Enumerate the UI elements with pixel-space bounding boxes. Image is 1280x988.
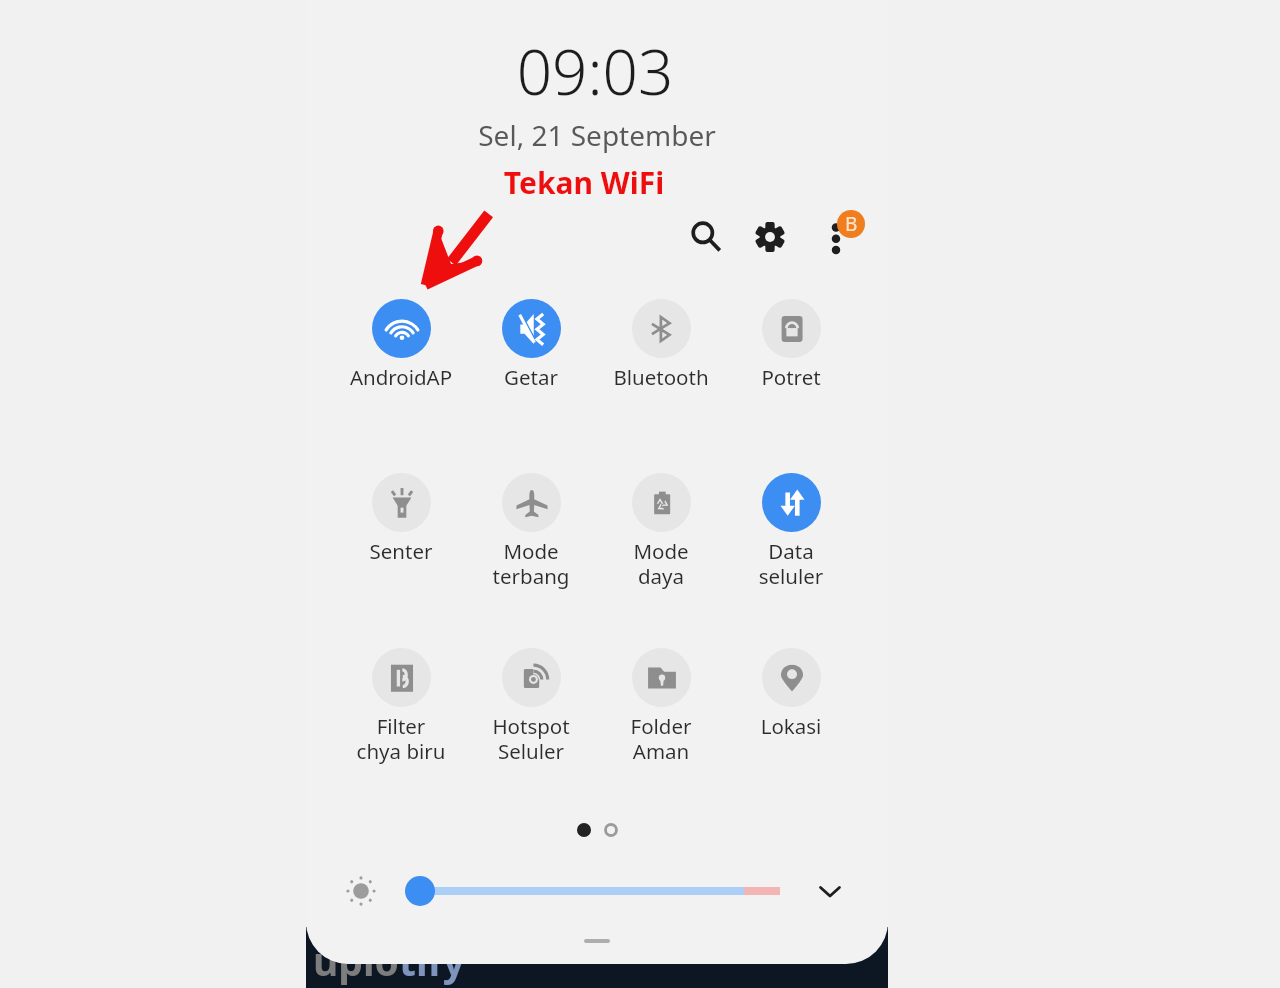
staticText: Folder Aman [599, 712, 723, 765]
staticText: 09:03 [395, 29, 795, 113]
staticText: AndroidAP [339, 363, 463, 391]
staticText: Senter [339, 537, 463, 565]
staticText: Potret [729, 363, 853, 391]
button[interactable]: AndroidAP [339, 299, 463, 391]
button[interactable]: Bluetooth [599, 299, 723, 391]
staticText: Sel, 21 September [397, 116, 797, 154]
staticText: Hotspot Seluler [469, 712, 593, 765]
button[interactable]: Data seluler [729, 473, 853, 590]
staticText: Data seluler [729, 537, 853, 590]
button[interactable]: Mode daya [599, 473, 723, 590]
button[interactable]: Filter chya biru [339, 648, 463, 765]
staticText: Mode daya [599, 537, 723, 590]
staticText: Mode terbang [469, 537, 593, 590]
button[interactable]: Folder Aman [599, 648, 723, 765]
button[interactable]: Senter [339, 473, 463, 565]
button[interactable]: Settings [744, 211, 796, 263]
staticText: Filter chya biru [339, 712, 463, 765]
button[interactable]: Profile B [837, 210, 865, 238]
staticText: Tekan WiFi [384, 162, 784, 203]
button[interactable]: Lokasi [729, 648, 853, 740]
staticText: Bluetooth [599, 363, 723, 391]
staticText: uplotify [313, 934, 465, 987]
button[interactable]: Expand [806, 867, 854, 915]
staticText: Lokasi [729, 712, 853, 740]
button[interactable]: Hotspot Seluler [469, 648, 593, 765]
button[interactable]: Page 2 [604, 823, 618, 837]
button[interactable]: More options [812, 213, 860, 261]
button[interactable]: Potret [729, 299, 853, 391]
button[interactable]: Brightness [405, 876, 780, 906]
button[interactable]: Getar [469, 299, 593, 391]
staticText: B [845, 211, 858, 237]
staticText: Getar [469, 363, 593, 391]
button[interactable]: Mode terbang [469, 473, 593, 590]
button[interactable]: Search [680, 210, 732, 262]
button[interactable]: Page 1 [577, 823, 591, 837]
